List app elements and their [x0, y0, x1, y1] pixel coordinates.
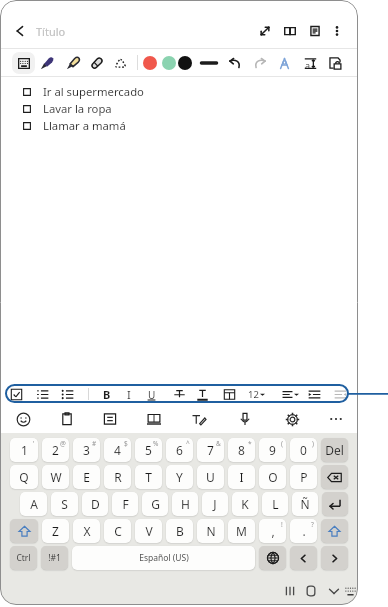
- button[interactable]: Back: [8, 19, 32, 43]
- button[interactable]: 9: [259, 438, 286, 462]
- button[interactable]: 5: [135, 438, 162, 462]
- button[interactable]: A: [20, 492, 47, 516]
- button[interactable]: Home: [300, 580, 322, 602]
- button[interactable]: O: [259, 465, 286, 489]
- button[interactable]: 7: [197, 438, 224, 462]
- button[interactable]: R: [104, 465, 131, 489]
- button[interactable]: Emoji: [9, 406, 37, 432]
- button[interactable]: Numbered list: [31, 384, 53, 404]
- button[interactable]: Highlighter: [61, 51, 85, 75]
- button[interactable]: Ñ: [292, 492, 318, 516]
- button[interactable]: E: [73, 465, 100, 489]
- button[interactable]: U: [197, 465, 224, 489]
- button[interactable]: Y: [166, 465, 193, 489]
- button[interactable]: Hide keyboard: [323, 580, 345, 602]
- button[interactable]: V: [135, 519, 162, 543]
- button[interactable]: 2: [42, 438, 69, 462]
- button[interactable]: 3: [73, 438, 100, 462]
- button[interactable]: F: [112, 492, 138, 516]
- button[interactable]: More options: [325, 19, 349, 43]
- button[interactable]: Lock: [323, 51, 347, 75]
- button[interactable]: Pen: [35, 51, 59, 75]
- button[interactable]: Colour: [173, 51, 197, 75]
- button[interactable]: Settings: [278, 406, 306, 432]
- button[interactable]: Right: [321, 546, 348, 570]
- button[interactable]: Shift: [10, 519, 38, 543]
- button[interactable]: N: [197, 519, 224, 543]
- button[interactable]: 6: [166, 438, 193, 462]
- button[interactable]: Bold: [96, 384, 118, 404]
- button[interactable]: B: [166, 519, 193, 543]
- button[interactable]: Ir al supermercado: [0, 83, 358, 100]
- staticText: P: [300, 469, 308, 485]
- button[interactable]: Language: [259, 546, 286, 570]
- button[interactable]: Translate: [96, 406, 124, 432]
- button[interactable]: Backspace: [321, 465, 348, 489]
- button[interactable]: T: [135, 465, 162, 489]
- button[interactable]: Italic: [118, 384, 140, 404]
- button[interactable]: Voice input: [231, 406, 259, 432]
- button[interactable]: W: [42, 465, 69, 489]
- button[interactable]: Checklist: [5, 384, 27, 404]
- button[interactable]: Undo: [223, 51, 247, 75]
- button[interactable]: Text size: [298, 51, 322, 75]
- button[interactable]: Handwriting recognition: [272, 51, 296, 75]
- button[interactable]: ,: [259, 519, 286, 543]
- button[interactable]: Llamar a mamá: [0, 117, 358, 134]
- button[interactable]: Left: [290, 546, 317, 570]
- button[interactable]: Shift: [321, 519, 348, 543]
- button[interactable]: Redo: [248, 51, 272, 75]
- staticText: V: [145, 523, 153, 539]
- button[interactable]: Enter: [322, 492, 348, 516]
- button[interactable]: Español (US): [72, 546, 255, 570]
- button[interactable]: Expand: [253, 19, 277, 43]
- staticText: 12: [248, 388, 259, 401]
- button[interactable]: Lavar la ropa: [0, 100, 358, 117]
- button[interactable]: C: [104, 519, 131, 543]
- button[interactable]: L: [262, 492, 288, 516]
- button[interactable]: Text colour: [191, 384, 213, 404]
- button[interactable]: Del: [321, 438, 348, 462]
- button[interactable]: Align: [279, 384, 301, 404]
- button[interactable]: Bulleted list: [56, 384, 78, 404]
- button[interactable]: Keyboard: [12, 52, 35, 74]
- button[interactable]: Font size: [245, 384, 267, 404]
- button[interactable]: P: [290, 465, 317, 489]
- button[interactable]: Keyboard: [339, 580, 358, 602]
- button[interactable]: J: [202, 492, 228, 516]
- button[interactable]: Thickness: [197, 51, 221, 75]
- button[interactable]: S: [51, 492, 78, 516]
- button[interactable]: Colour: [138, 51, 162, 75]
- button[interactable]: I: [228, 465, 255, 489]
- button[interactable]: Indent: [303, 384, 325, 404]
- button[interactable]: Strikethrough: [168, 384, 190, 404]
- button[interactable]: 4: [104, 438, 131, 462]
- button[interactable]: !#1: [41, 546, 68, 570]
- button[interactable]: 0: [290, 438, 317, 462]
- button[interactable]: K: [232, 492, 258, 516]
- button[interactable]: M: [228, 519, 255, 543]
- button[interactable]: 1: [10, 438, 38, 462]
- button[interactable]: Book view: [278, 19, 302, 43]
- button[interactable]: H: [172, 492, 198, 516]
- button[interactable]: Colour: [157, 51, 181, 75]
- button[interactable]: Ctrl: [10, 546, 37, 570]
- button[interactable]: Clipboard: [53, 406, 81, 432]
- button[interactable]: Q: [10, 465, 38, 489]
- button[interactable]: 8: [228, 438, 255, 462]
- button[interactable]: G: [142, 492, 168, 516]
- button[interactable]: D: [82, 492, 108, 516]
- button[interactable]: Stickers: [140, 406, 168, 432]
- button[interactable]: List view: [303, 19, 327, 43]
- button[interactable]: X: [73, 519, 100, 543]
- button[interactable]: Z: [42, 519, 69, 543]
- button[interactable]: Eraser: [84, 51, 108, 75]
- button[interactable]: Outdent: [329, 384, 351, 404]
- button[interactable]: Highlight: [218, 384, 240, 404]
- button[interactable]: Recents: [279, 580, 301, 602]
- button[interactable]: Handwriting: [184, 406, 212, 432]
- button[interactable]: Select: [108, 51, 132, 75]
- button[interactable]: Underline: [140, 384, 162, 404]
- button[interactable]: More: [322, 406, 350, 432]
- button[interactable]: .: [290, 519, 317, 543]
